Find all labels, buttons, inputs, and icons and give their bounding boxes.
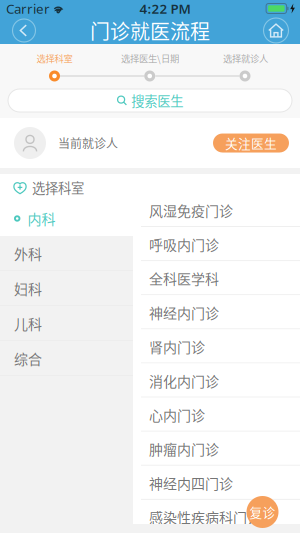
staticText: 儿科 [14,313,42,334]
button[interactable]: Home [256,17,296,43]
button[interactable]: 呼吸内门诊 [133,227,300,261]
button[interactable]: 儿科 [0,306,133,341]
button[interactable]: 感染性疾病科门诊 [133,500,300,533]
button[interactable]: 复诊 [246,496,278,528]
staticText: 选择科室 [36,51,72,65]
staticText: 妇科 [14,278,42,299]
staticText: 感染性疾病科门诊 [149,507,261,527]
button[interactable]: 肾内门诊 [133,329,300,363]
button[interactable]: 心内门诊 [133,398,300,432]
staticText: 当前就诊人 [58,134,118,152]
button[interactable]: 神经内四门诊 [133,466,300,500]
staticText: 消化内门诊 [149,370,219,391]
staticText: 门诊就医流程 [90,16,210,45]
staticText: Carrier [6,0,50,17]
button[interactable]: 妇科 [0,271,133,306]
button[interactable]: 消化内门诊 [133,363,300,398]
staticText: 肿瘤内门诊 [149,439,219,459]
button[interactable]: 神经内门诊 [133,295,300,329]
staticText: 呼吸内门诊 [149,234,219,254]
staticText: 神经内门诊 [149,302,219,322]
staticText: 搜索医生 [131,91,183,110]
button[interactable]: 综合 [0,341,133,376]
staticText: 神经内四门诊 [149,473,233,493]
staticText: 4:22 PM [140,0,191,17]
button[interactable]: Back [4,17,44,43]
button[interactable]: 搜索医生 [8,89,292,112]
staticText: 综合 [14,348,42,369]
button[interactable]: 关注医生 [213,133,289,152]
button[interactable]: 肿瘤内门诊 [133,432,300,466]
staticText: 风湿免疫门诊 [149,200,233,220]
button[interactable]: 外科 [0,236,133,271]
button[interactable]: 内科 [0,201,133,236]
staticText: 选择就诊人 [223,51,268,65]
staticText: 内科 [27,208,55,229]
staticText: 全科医学科 [149,268,219,288]
button[interactable]: 风湿免疫门诊 [133,193,300,227]
staticText: 外科 [14,243,42,264]
button[interactable]: 全科医学科 [133,261,300,295]
staticText: 肾内门诊 [149,336,205,357]
staticText: 复诊 [249,503,275,521]
staticText: 心内门诊 [149,404,205,425]
staticText: 选择科室 [32,178,84,197]
staticText: 选择医生\日期 [121,51,179,65]
staticText: 关注医生 [225,134,277,152]
